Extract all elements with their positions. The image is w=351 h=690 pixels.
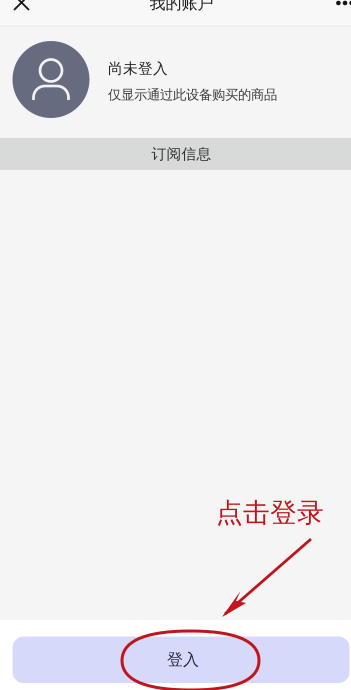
staticText: 登入: [167, 650, 199, 670]
button[interactable]: 登入: [12, 636, 349, 683]
staticText: 尚未登入: [108, 59, 168, 77]
staticText: 我的账户: [149, 0, 213, 13]
staticText: 订阅信息: [151, 145, 211, 163]
button[interactable]: 关闭: [0, 0, 30, 24]
staticText: 点击登录: [216, 496, 324, 530]
button[interactable]: 更多: [0, 0, 24, 20]
staticText: 仅显示通过此设备购买的商品: [108, 86, 277, 103]
